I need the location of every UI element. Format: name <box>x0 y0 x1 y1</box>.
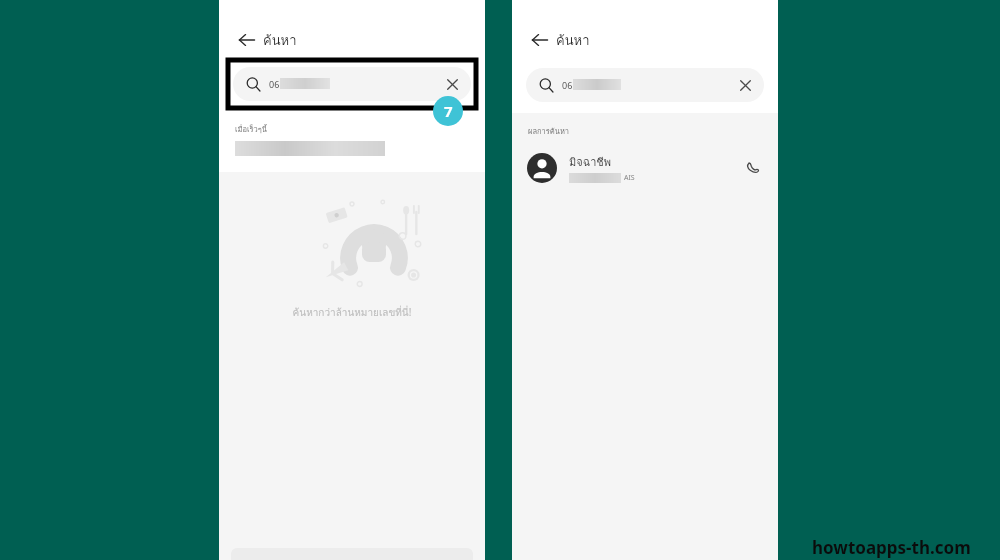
staticText: howtoapps-th.com <box>812 536 971 559</box>
staticText: 7 <box>444 101 453 121</box>
staticText: 06 <box>269 78 280 90</box>
staticText: ผลการค้นหา <box>528 125 570 137</box>
staticText: AIS <box>624 173 635 183</box>
button[interactable]: Back <box>231 24 263 56</box>
staticText: ค้นหา <box>556 30 590 51</box>
staticText: มิจฉาชีพ <box>569 153 612 170</box>
button[interactable]: มิจฉาชีพ <box>512 145 778 191</box>
button[interactable]: Clear search <box>730 70 760 100</box>
button[interactable]: 06 <box>233 67 471 101</box>
staticText: เมื่อเร็วๆนี้ <box>235 123 267 135</box>
button[interactable]: Clear search <box>437 69 467 99</box>
staticText: ค้นหากว่าล้านหมายเลขที่นี่! <box>219 305 485 321</box>
staticText: 06 <box>562 79 573 91</box>
staticText: ค้นหา <box>263 30 297 51</box>
button[interactable]: Back <box>524 24 556 56</box>
button[interactable]: 06 <box>526 68 764 102</box>
button[interactable]: Call <box>738 153 768 183</box>
